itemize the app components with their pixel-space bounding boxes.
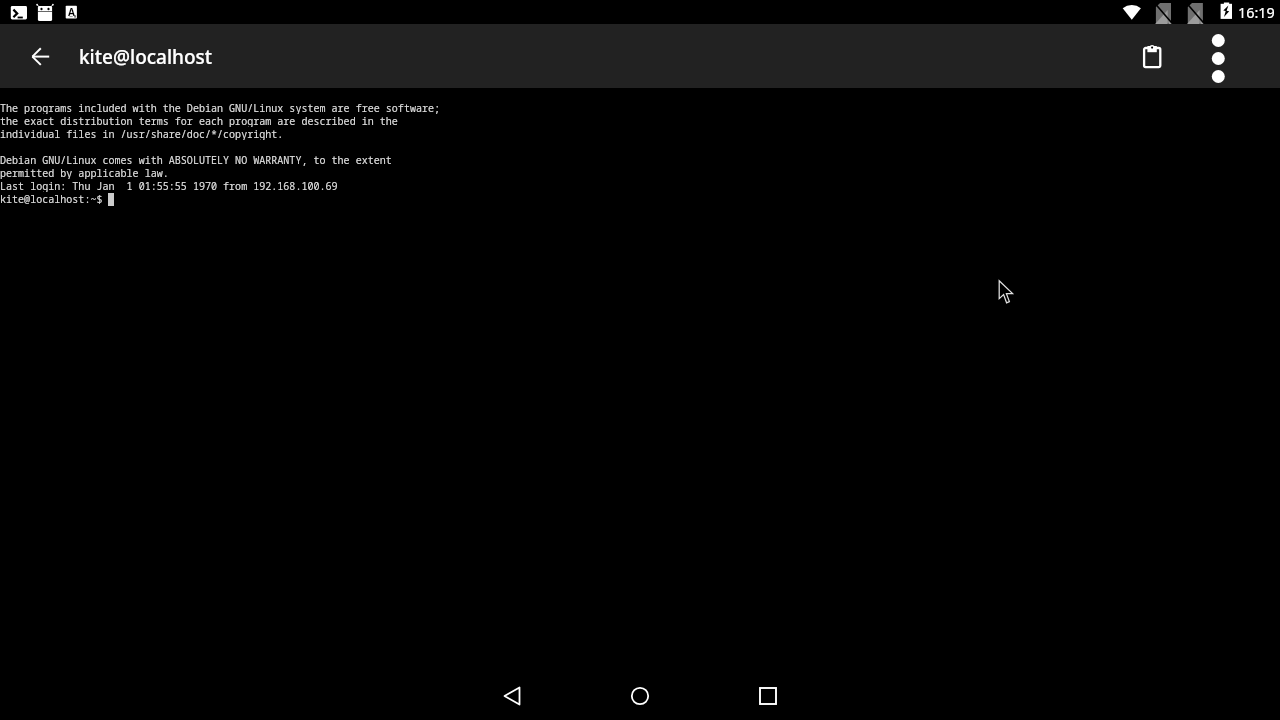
button[interactable]: Terminal output: [0, 88, 1280, 672]
button[interactable]: Paste: [1128, 33, 1176, 81]
staticText: 16:19: [1238, 3, 1275, 23]
button[interactable]: Home: [616, 672, 664, 720]
staticText: permitted by applicable law.: [0, 166, 169, 179]
button[interactable]: Recent apps: [744, 672, 792, 720]
staticText: Last login: Thu Jan 1 01:55:55 1970 from…: [0, 179, 338, 192]
staticText: kite@localhost:~$: [0, 192, 109, 205]
staticText: the exact distribution terms for each pr…: [0, 114, 398, 127]
button[interactable]: More options: [1194, 32, 1242, 80]
staticText: Debian GNU/Linux comes with ABSOLUTELY N…: [0, 153, 392, 166]
staticText: The programs included with the Debian GN…: [0, 101, 441, 114]
button[interactable]: Back: [488, 672, 536, 720]
staticText: individual files in /usr/share/doc/*/cop…: [0, 127, 284, 140]
staticText: kite@localhost: [79, 44, 213, 70]
button[interactable]: Navigate up: [16, 33, 64, 81]
staticText: A: [68, 5, 75, 19]
